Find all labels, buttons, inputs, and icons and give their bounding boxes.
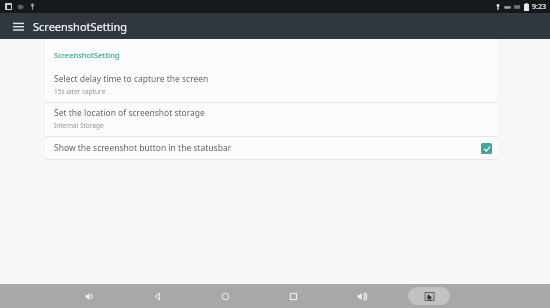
staticText: Show the screenshot button in the status… (54, 142, 481, 154)
staticText: 9:23 (532, 2, 546, 12)
button[interactable]: Open navigation menu (8, 16, 28, 36)
staticText: Set the location of screenshot storage (54, 107, 205, 119)
staticText: ScreenshotSetting (54, 50, 120, 60)
button[interactable]: Recent apps (282, 285, 304, 307)
button[interactable]: Volume down (78, 285, 100, 307)
button[interactable]: Set the location of screenshot storage (45, 103, 498, 136)
staticText: 15s later capture (54, 87, 106, 96)
other: Show screenshot button, enabled (481, 143, 492, 154)
button[interactable]: Volume up (350, 285, 372, 307)
staticText: ScreenshotSetting (33, 19, 128, 34)
button[interactable]: Home (214, 285, 236, 307)
staticText: Select delay time to capture the screen (54, 73, 209, 85)
button[interactable]: Show the screenshot button in the status… (45, 137, 498, 159)
button[interactable]: Back (146, 285, 168, 307)
button[interactable]: Select delay time to capture the screen (45, 69, 498, 102)
staticText: Internal Storage (54, 121, 104, 130)
button[interactable]: Take screenshot (408, 287, 450, 305)
